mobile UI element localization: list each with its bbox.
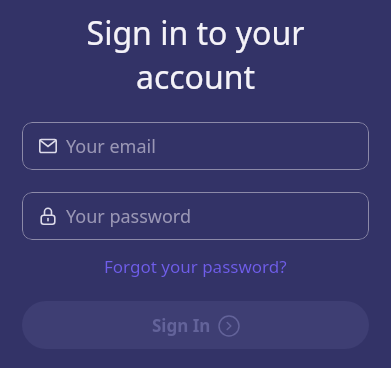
button[interactable]: Forgot your password? [104,255,287,278]
staticText: account [0,55,391,99]
staticText: Sign in to your [0,11,391,55]
button[interactable]: Your email [22,122,369,170]
staticText: Sign In [152,314,211,337]
staticText: Your email [66,134,156,159]
button[interactable]: Sign In [22,301,369,349]
button[interactable]: Your password [22,192,369,240]
staticText: Your password [66,204,192,229]
